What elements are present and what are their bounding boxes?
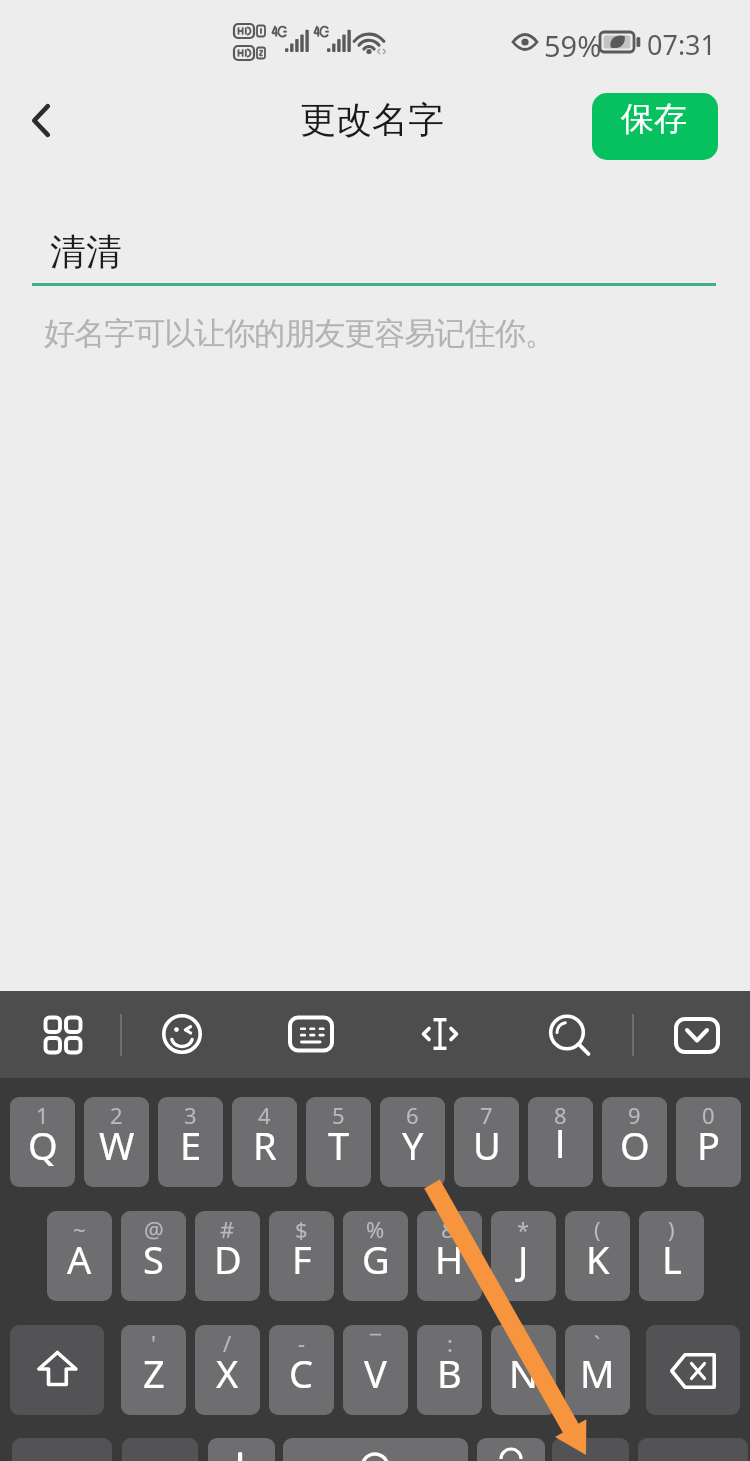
button[interactable]: Shift (10, 1325, 104, 1415)
button[interactable]: * (491, 1211, 556, 1301)
staticText: * (517, 1214, 530, 1244)
button[interactable]: Keyboard (268, 991, 354, 1078)
button[interactable]: Emoji (552, 1438, 629, 1461)
staticText: O (620, 1119, 650, 1171)
staticText: X (216, 1347, 239, 1399)
button[interactable]: ( (565, 1211, 630, 1301)
button[interactable]: ¯ (343, 1325, 408, 1415)
button[interactable]: @ (121, 1211, 186, 1301)
button[interactable]: Space (283, 1438, 468, 1461)
staticText: T (328, 1119, 350, 1171)
staticText: 9 (628, 1100, 641, 1130)
staticText: ¯ (370, 1328, 382, 1358)
staticText: L (662, 1233, 682, 1285)
staticText: @ (144, 1214, 164, 1244)
staticText: ( (594, 1214, 601, 1244)
staticText: ' (151, 1328, 156, 1358)
staticText: & (441, 1214, 458, 1244)
staticText: 4 (258, 1100, 271, 1130)
staticText: 好名字可以让你的朋友更容易记住你。 (44, 314, 555, 353)
button[interactable]: Back (0, 83, 78, 169)
button[interactable]: # (195, 1211, 260, 1301)
button[interactable]: 6 (380, 1097, 445, 1187)
button[interactable]: Move cursor (397, 991, 483, 1078)
staticText: V (364, 1347, 387, 1399)
button[interactable]: 3 (158, 1097, 223, 1187)
staticText: N (509, 1347, 538, 1399)
staticText: - (298, 1328, 306, 1358)
staticText: 保存 (621, 98, 687, 140)
button[interactable]: 9 (602, 1097, 667, 1187)
staticText: I (555, 1123, 566, 1168)
button[interactable]: ' (121, 1325, 186, 1415)
staticText: U (473, 1119, 501, 1171)
staticText: ` (594, 1328, 601, 1358)
button[interactable]: 4 (232, 1097, 297, 1187)
staticText: D (214, 1233, 242, 1285)
button[interactable]: Symbols (12, 1438, 112, 1461)
staticText: ) (668, 1214, 675, 1244)
button[interactable]: % (343, 1211, 408, 1301)
staticText: P (697, 1119, 720, 1171)
button[interactable]: Switch language (208, 1438, 275, 1461)
button[interactable]: Hide keyboard (654, 991, 740, 1078)
staticText: Z (143, 1347, 165, 1399)
button[interactable]: 2 (84, 1097, 149, 1187)
button[interactable]: ` (565, 1325, 630, 1415)
staticText: J (518, 1233, 529, 1285)
staticText: 8 (554, 1100, 567, 1130)
button[interactable]: $ (269, 1211, 334, 1301)
staticText: E (180, 1119, 202, 1171)
staticText: 07:31 (647, 26, 717, 63)
staticText: A (67, 1233, 92, 1285)
button[interactable]: ; (491, 1325, 556, 1415)
staticText: B (437, 1347, 462, 1399)
staticText: 更改名字 (300, 97, 444, 142)
button[interactable]: Emoji (139, 991, 225, 1078)
staticText: : (447, 1328, 453, 1358)
button[interactable]: 5 (306, 1097, 371, 1187)
staticText: % (366, 1214, 385, 1244)
staticText: M (580, 1347, 615, 1399)
staticText: 清清 (50, 229, 122, 274)
button[interactable]: Enter (638, 1438, 748, 1461)
button[interactable]: 8 (528, 1097, 593, 1187)
staticText: 1 (36, 1100, 49, 1130)
staticText: 2 (110, 1100, 123, 1130)
staticText: K (586, 1233, 610, 1285)
staticText: # (220, 1214, 235, 1244)
button[interactable]: & (417, 1211, 482, 1301)
button[interactable]: 1 (10, 1097, 75, 1187)
button[interactable]: Apps (20, 991, 106, 1078)
staticText: Q (28, 1119, 58, 1171)
staticText: Y (402, 1119, 424, 1171)
staticText: S (143, 1233, 164, 1285)
staticText: H (435, 1233, 464, 1285)
button[interactable]: Period (477, 1438, 545, 1461)
button[interactable]: ~ (47, 1211, 112, 1301)
button[interactable]: Backspace (646, 1325, 740, 1415)
staticText: $ (295, 1214, 308, 1244)
staticText: ; (521, 1328, 527, 1358)
button[interactable]: 保存 (592, 93, 718, 160)
staticText: 3 (184, 1100, 197, 1130)
staticText: ~ (73, 1214, 86, 1244)
staticText: G (362, 1233, 390, 1285)
button[interactable]: : (417, 1325, 482, 1415)
staticText: R (253, 1119, 277, 1171)
staticText: 6 (406, 1100, 419, 1130)
button[interactable]: ) (639, 1211, 704, 1301)
button[interactable]: Search (524, 991, 610, 1078)
button[interactable]: 0 (676, 1097, 741, 1187)
staticText: 59% (544, 26, 602, 65)
staticText: 7 (480, 1100, 493, 1130)
staticText: C (289, 1347, 314, 1399)
staticText: W (99, 1119, 135, 1171)
staticText: / (223, 1328, 232, 1358)
button[interactable]: Comma (122, 1438, 198, 1461)
staticText: 0 (702, 1100, 715, 1130)
button[interactable]: 7 (454, 1097, 519, 1187)
staticText: 5 (332, 1100, 345, 1130)
button[interactable]: - (269, 1325, 334, 1415)
button[interactable]: / (195, 1325, 260, 1415)
